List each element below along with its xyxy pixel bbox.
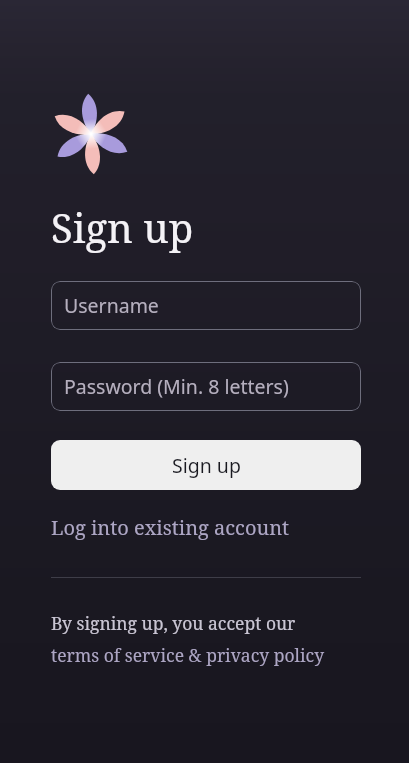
staticText: Log into existing account: [51, 514, 290, 541]
staticText: By signing up, you accept our: [51, 611, 296, 635]
button[interactable]: Username: [51, 281, 361, 330]
staticText: Password (Min. 8 letters): [64, 373, 289, 400]
staticText: Sign up: [172, 452, 241, 479]
staticText: terms of service & privacy policy: [51, 643, 325, 667]
button[interactable]: Password (Min. 8 letters): [51, 362, 361, 411]
button[interactable]: Sign up: [51, 440, 361, 490]
button[interactable]: Log into existing account: [51, 514, 290, 541]
button[interactable]: terms of service & privacy policy: [51, 643, 325, 667]
staticText: Sign up: [51, 200, 194, 254]
staticText: Username: [64, 292, 159, 319]
